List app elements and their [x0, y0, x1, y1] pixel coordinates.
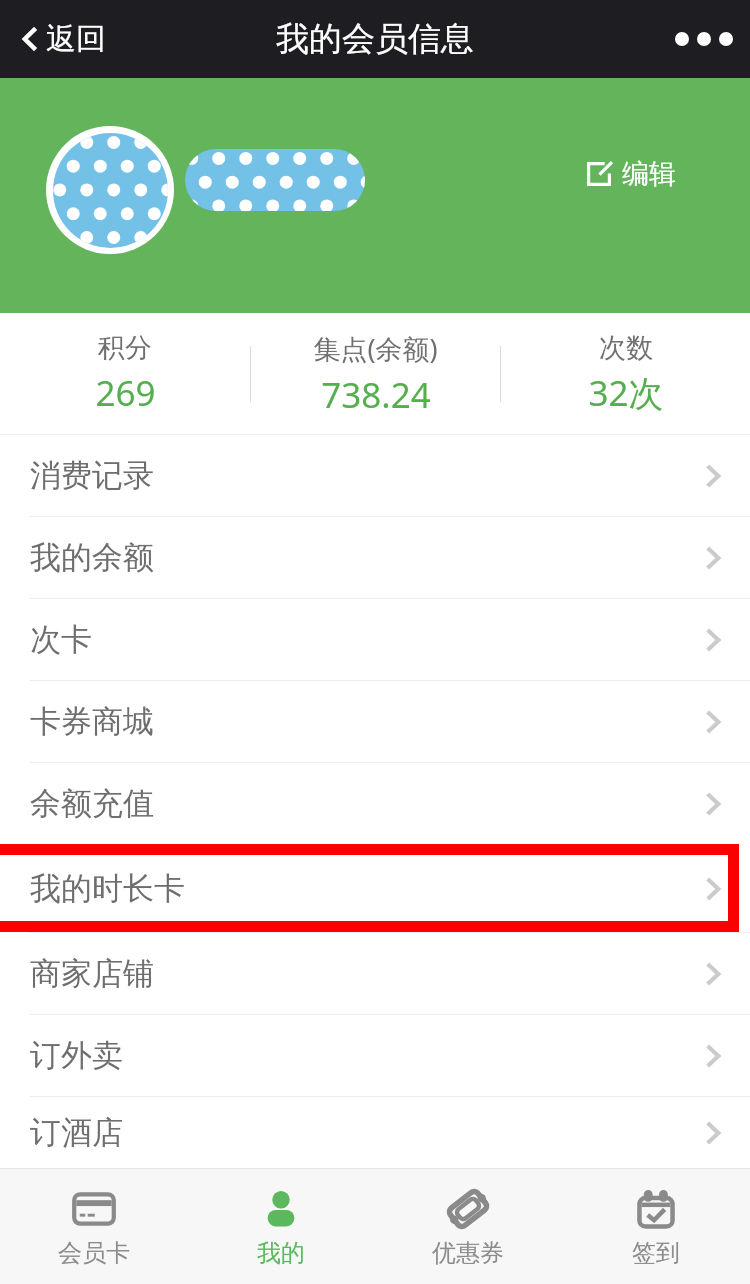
staticText: 我的: [257, 1238, 305, 1268]
button[interactable]: 集点(余额): [251, 313, 500, 435]
staticText: 次数: [599, 331, 653, 365]
button[interactable]: 我的时长卡: [0, 848, 750, 929]
button[interactable]: 编辑: [580, 149, 682, 199]
button[interactable]: 积分: [0, 313, 250, 435]
button[interactable]: 我的余额: [0, 517, 750, 598]
button[interactable]: 订酒店: [0, 1097, 750, 1168]
button[interactable]: 优惠券: [374, 1169, 562, 1284]
staticText: 订酒店: [30, 1113, 123, 1152]
staticText: 签到: [632, 1238, 680, 1268]
staticText: 我的会员信息: [276, 18, 474, 60]
staticText: 优惠券: [432, 1238, 504, 1268]
staticText: 32次: [588, 369, 664, 417]
staticText: 269: [95, 369, 156, 417]
staticText: 次卡: [30, 620, 92, 659]
staticText: 商家店铺: [30, 954, 154, 993]
button[interactable]: More options: [674, 11, 734, 67]
button[interactable]: 商家店铺: [0, 933, 750, 1014]
staticText: 消费记录: [30, 456, 154, 495]
button[interactable]: 签到: [562, 1169, 750, 1284]
button[interactable]: 余额充值: [0, 763, 750, 844]
button[interactable]: 次卡: [0, 599, 750, 680]
button[interactable]: Avatar: [46, 126, 174, 254]
button[interactable]: 订外卖: [0, 1015, 750, 1096]
staticText: 我的余额: [30, 538, 154, 577]
staticText: 会员卡: [58, 1238, 130, 1268]
button[interactable]: 卡券商城: [0, 681, 750, 762]
staticText: 返回: [46, 20, 106, 58]
button[interactable]: 返回: [14, 14, 112, 64]
staticText: 我的时长卡: [30, 869, 185, 908]
button[interactable]: 我的: [187, 1169, 374, 1284]
staticText: 积分: [98, 331, 152, 365]
button[interactable]: 会员卡: [0, 1169, 187, 1284]
staticText: 卡券商城: [30, 702, 154, 741]
staticText: 编辑: [622, 157, 676, 191]
staticText: 738.24: [321, 371, 431, 419]
staticText: 订外卖: [30, 1036, 123, 1075]
staticText: 集点(余额): [313, 330, 438, 367]
button[interactable]: 消费记录: [0, 435, 750, 516]
staticText: 余额充值: [30, 784, 154, 823]
button[interactable]: 次数: [501, 313, 750, 435]
